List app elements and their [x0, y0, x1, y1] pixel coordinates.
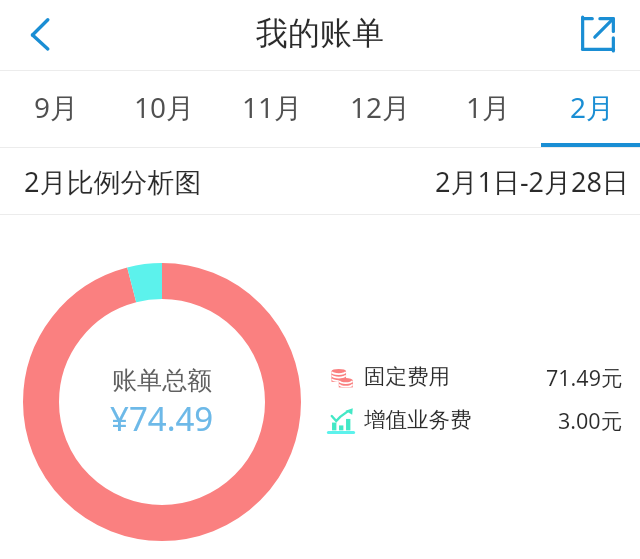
staticText: ¥74.49 [110, 396, 214, 441]
staticText: 12月 [350, 88, 411, 126]
staticText: 71.49元 [546, 363, 623, 389]
button[interactable]: 增值业务费 [325, 406, 623, 432]
button[interactable]: 12月 [325, 71, 433, 147]
staticText: 固定费用 [364, 363, 450, 389]
button[interactable]: Back [13, 7, 69, 63]
staticText: 9月 [34, 88, 79, 126]
button[interactable]: 9月 [1, 71, 109, 147]
staticText: 1月 [466, 88, 511, 126]
button[interactable]: 10月 [109, 71, 217, 147]
staticText: 账单总额 [112, 365, 212, 396]
staticText: 2月1日-2月28日 [435, 163, 629, 200]
staticText: 3.00元 [558, 406, 623, 432]
button[interactable]: 固定费用 [325, 363, 623, 389]
button[interactable]: Share [573, 9, 623, 59]
button[interactable]: 1月 [433, 71, 541, 147]
staticText: 增值业务费 [364, 406, 472, 432]
button[interactable]: 11月 [217, 71, 325, 147]
staticText: 2月 [570, 88, 615, 126]
staticText: 我的账单 [256, 13, 384, 53]
staticText: 10月 [134, 88, 195, 126]
staticText: 2月比例分析图 [24, 163, 202, 200]
button[interactable]: 2月 [541, 71, 640, 147]
staticText: 11月 [242, 88, 303, 126]
